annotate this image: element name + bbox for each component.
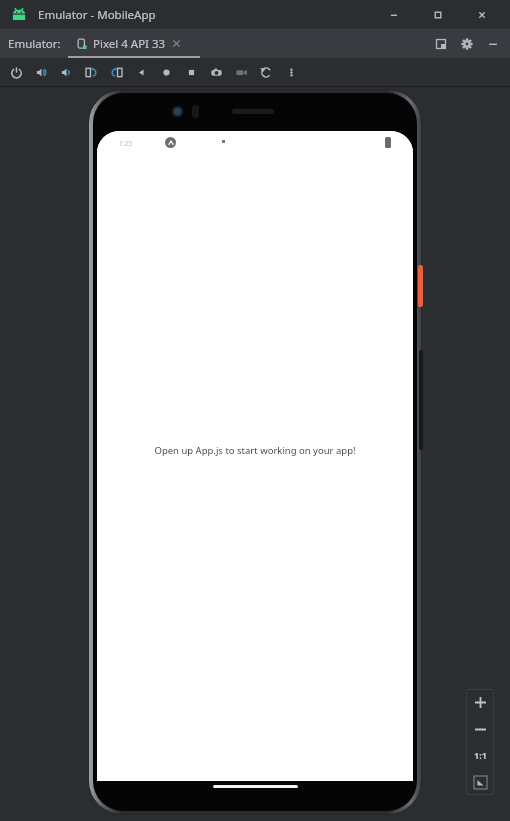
- button[interactable]: Take screenshot: [204, 59, 229, 85]
- button[interactable]: Overview: [179, 59, 204, 85]
- staticText: 1:25: [119, 139, 132, 148]
- button[interactable]: Back to previous: [254, 59, 279, 85]
- staticText: Emulator - MobileApp: [38, 7, 156, 23]
- button[interactable]: Maximize: [416, 1, 460, 29]
- button[interactable]: Home: [154, 59, 179, 85]
- button[interactable]: Hide: [480, 31, 506, 57]
- button[interactable]: Record screen: [229, 59, 254, 85]
- button[interactable]: Rotate left: [79, 59, 104, 85]
- button[interactable]: Power button: [418, 265, 423, 307]
- button[interactable]: Close: [460, 1, 504, 29]
- button[interactable]: Settings: [454, 31, 480, 57]
- button[interactable]: Zoom out: [467, 716, 493, 742]
- button[interactable]: Rotate right: [104, 59, 129, 85]
- button[interactable]: 1:1: [467, 742, 493, 768]
- button[interactable]: Back: [129, 59, 154, 85]
- button[interactable]: More: [279, 59, 304, 85]
- staticText: Open up App.js to start working on your …: [154, 444, 356, 457]
- staticText: Pixel 4 API 33: [93, 36, 166, 52]
- button[interactable]: Minimize: [372, 1, 416, 29]
- button[interactable]: Zoom in: [467, 689, 493, 715]
- button[interactable]: Pixel 4 API 33: [68, 29, 187, 58]
- button[interactable]: Panel layout: [428, 31, 454, 57]
- button[interactable]: Power: [4, 59, 29, 85]
- button[interactable]: Volume down: [54, 59, 79, 85]
- staticText: Emulator:: [8, 36, 61, 52]
- button[interactable]: Fit to screen: [467, 769, 493, 795]
- button[interactable]: Volume up: [29, 59, 54, 85]
- staticText: 1:1: [474, 749, 487, 761]
